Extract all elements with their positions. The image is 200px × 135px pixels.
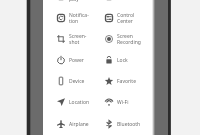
staticText: Airplane [69,121,89,128]
staticText: Notifica- tion [69,12,89,25]
button[interactable]: Power [57,53,105,67]
button[interactable]: Airplane [57,117,105,131]
staticText: Screen- shot [69,33,87,46]
button[interactable]: Device [57,74,105,88]
button[interactable]: Sound [105,0,153,3]
button[interactable]: Wi-Fi [105,95,153,109]
staticText: Device [69,78,85,85]
staticText: Dis- play [69,0,79,3]
staticText: Wi-Fi [117,99,129,106]
button[interactable]: Favorite [105,74,153,88]
button[interactable]: Location [57,95,105,109]
staticText: Control Center [117,12,135,25]
button[interactable]: Screen- shot [57,32,105,46]
button[interactable]: Control Center [105,11,153,25]
button[interactable]: Screen Recording [105,32,153,46]
staticText: Bluetooth [117,121,141,128]
staticText: Screen Recording [117,33,141,46]
button[interactable]: Lock [105,53,153,67]
staticText: Power [69,57,84,64]
button[interactable]: Bluetooth [105,117,153,131]
staticText: Favorite [117,78,136,85]
button[interactable]: Dis- play [57,0,105,3]
staticText: Lock [117,57,128,64]
staticText: Location [69,99,90,106]
button[interactable]: Notifica- tion [57,11,105,25]
